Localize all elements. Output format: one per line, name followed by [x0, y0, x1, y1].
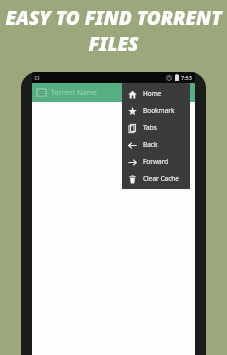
button[interactable]: Clear Cache	[122, 170, 190, 187]
staticText: Clear Cache	[143, 174, 180, 183]
button[interactable]: Bookmark	[122, 102, 190, 119]
staticText: EASY TO FIND TORRENT FILES	[4, 5, 223, 57]
button[interactable]: Back	[122, 136, 190, 153]
staticText: 7:53	[181, 74, 192, 81]
button[interactable]: Tabs	[122, 119, 190, 136]
staticText: Tabs	[143, 123, 157, 132]
staticText: Forward	[143, 157, 169, 166]
staticText: Torrent Name	[51, 88, 97, 98]
staticText: Home	[143, 89, 162, 98]
button[interactable]: Forward	[122, 153, 190, 170]
staticText: Bookmark	[143, 106, 175, 115]
staticText: Back	[143, 140, 158, 149]
button[interactable]: Menu	[36, 88, 47, 97]
button[interactable]: Home	[122, 85, 190, 102]
button[interactable]: Menu	[32, 83, 195, 102]
